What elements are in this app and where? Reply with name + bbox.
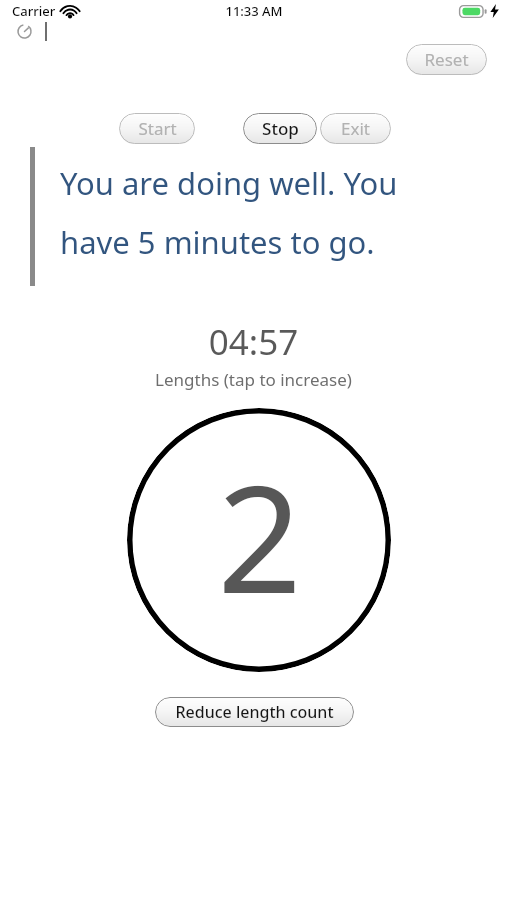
staticText: 04:57 — [0, 318, 507, 366]
button[interactable]: Reset — [406, 44, 487, 75]
staticText: Lengths (tap to increase) — [0, 368, 507, 391]
button[interactable]: Start — [119, 113, 195, 144]
staticText: Reduce length count — [175, 701, 334, 723]
staticText: You are doing well. You have 5 minutes t… — [60, 162, 455, 263]
staticText: Reset — [424, 48, 469, 71]
other: Recent timers — [17, 24, 32, 39]
button[interactable]: Reduce length count — [155, 697, 354, 727]
staticText: Exit — [341, 117, 370, 140]
button[interactable]: Stop — [243, 113, 317, 144]
staticText: 2 — [217, 435, 302, 637]
staticText: Carrier — [12, 2, 56, 20]
staticText: 11:33 AM — [225, 2, 283, 20]
staticText: Stop — [262, 117, 299, 140]
button[interactable]: 2 — [127, 408, 391, 672]
button[interactable]: Exit — [320, 113, 391, 144]
staticText: Start — [138, 117, 177, 140]
